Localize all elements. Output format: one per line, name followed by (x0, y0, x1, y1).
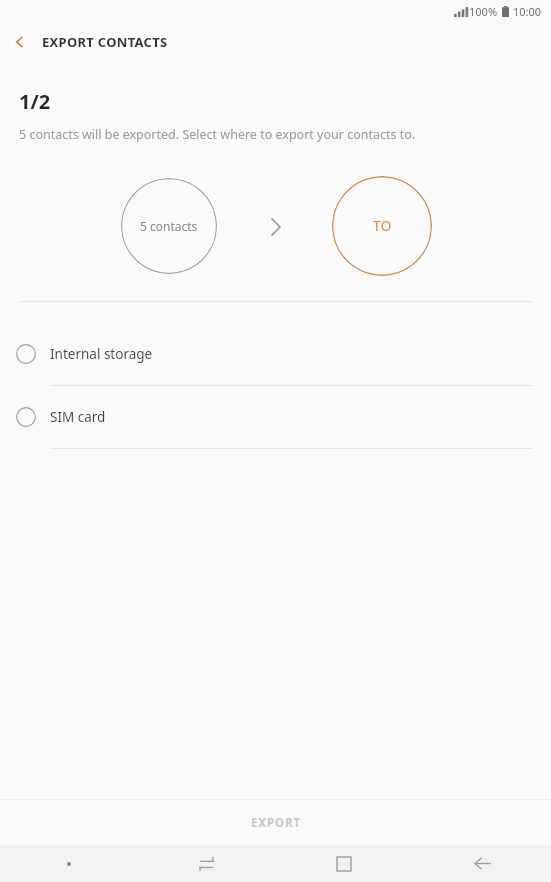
staticText: 10:00 (513, 4, 542, 19)
button[interactable]: Back (0, 22, 40, 62)
button[interactable]: Back (413, 845, 551, 882)
button[interactable]: Internal storage (0, 323, 551, 386)
button[interactable]: Home (275, 845, 413, 882)
staticText: 100% (469, 4, 498, 19)
button[interactable]: SIM card (0, 386, 551, 449)
staticText: EXPORT (251, 815, 301, 831)
staticText: SIM card (50, 408, 106, 426)
staticText: 5 contacts (140, 218, 198, 234)
button[interactable]: EXPORT (0, 800, 551, 845)
staticText: 1/2 (19, 88, 51, 115)
button[interactable]: 5 contacts (121, 178, 217, 274)
staticText: EXPORT CONTACTS (42, 33, 168, 51)
staticText: Internal storage (50, 345, 153, 363)
button[interactable]: Recents (137, 845, 275, 882)
button[interactable]: TO (332, 176, 432, 276)
staticText: 5 contacts will be exported. Select wher… (19, 126, 416, 143)
staticText: TO (373, 217, 392, 235)
